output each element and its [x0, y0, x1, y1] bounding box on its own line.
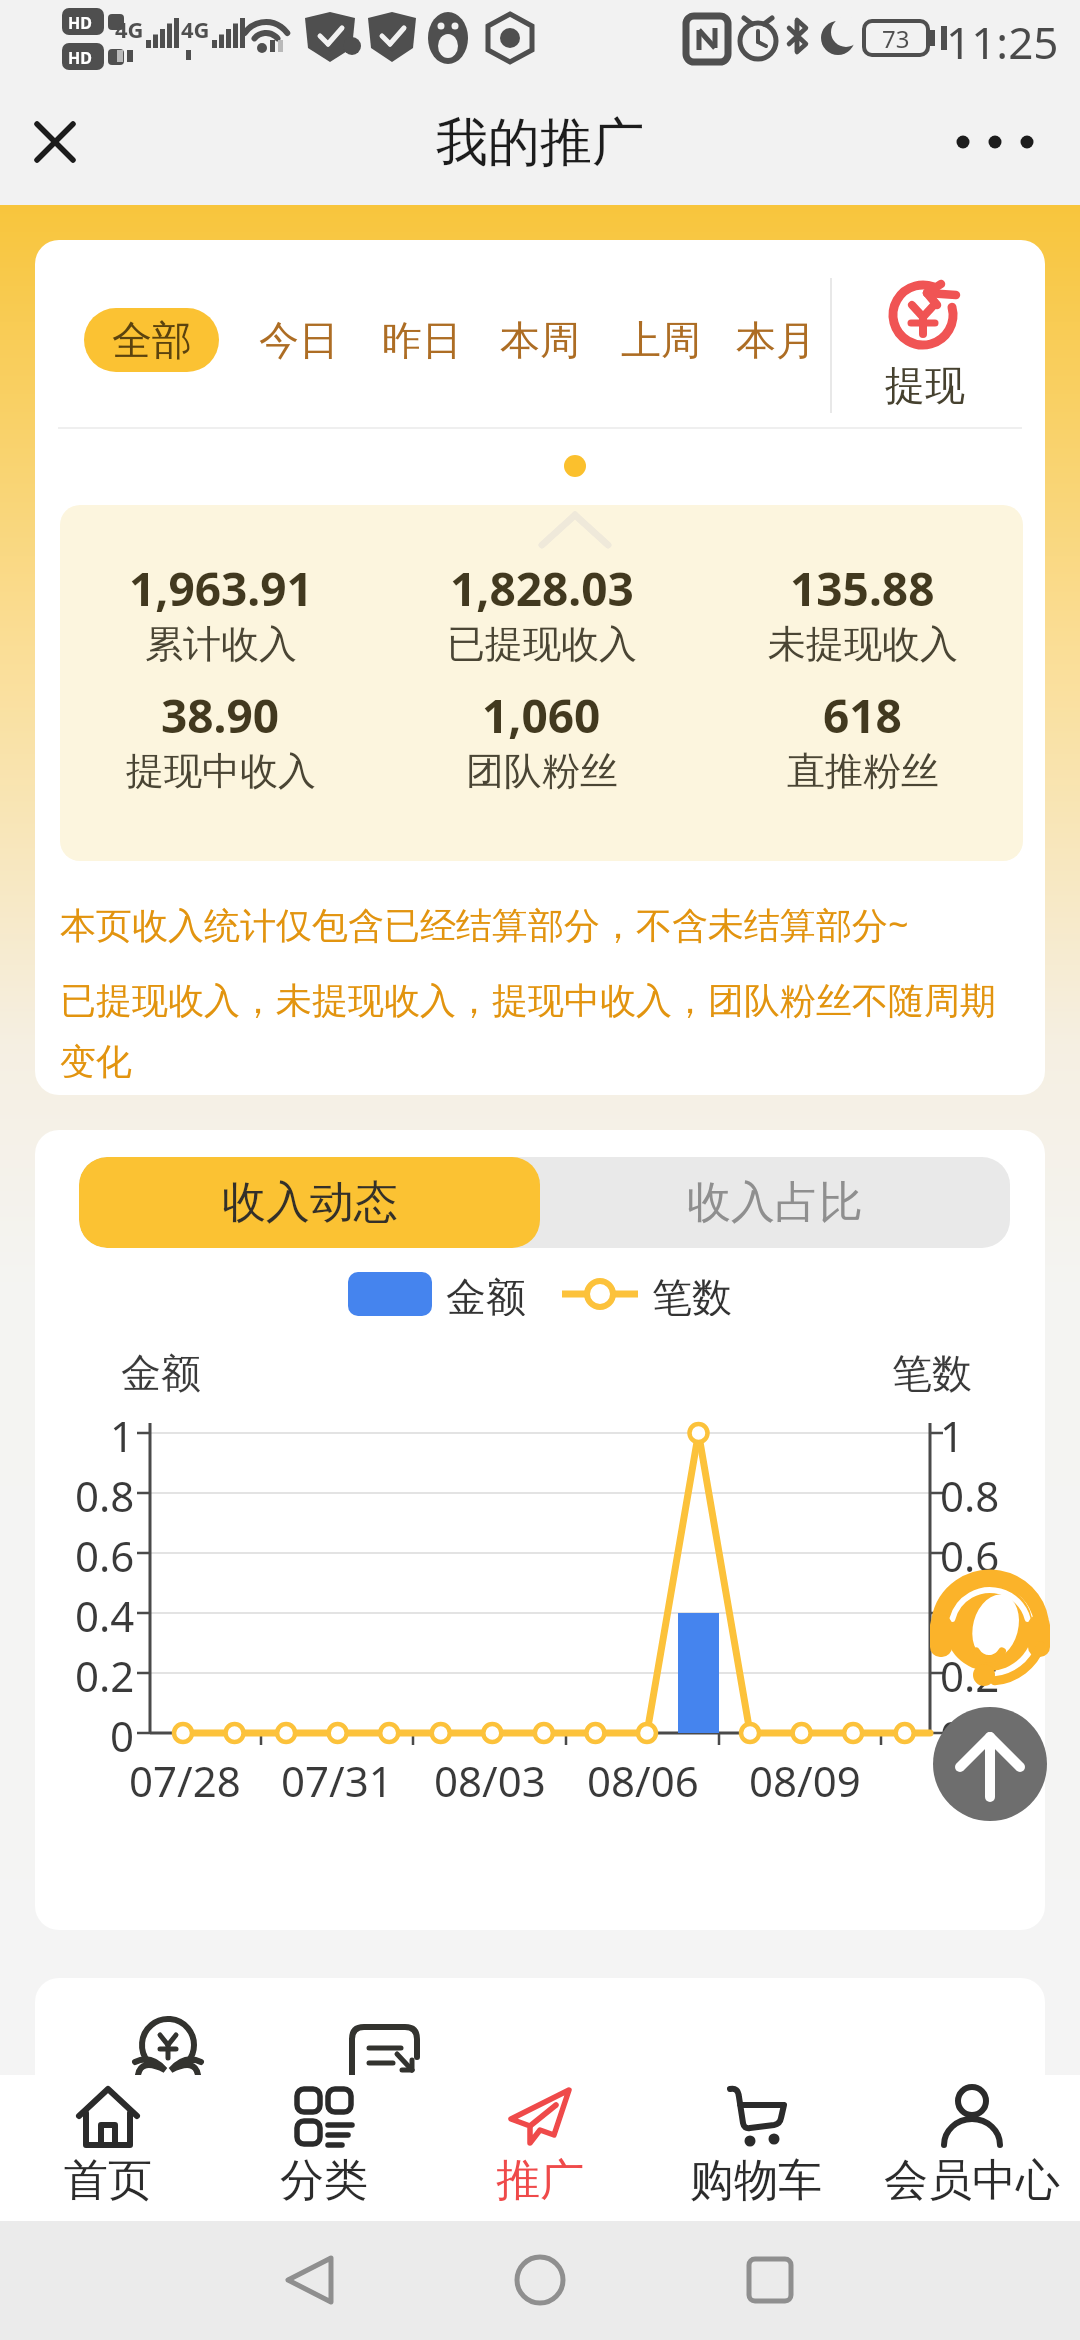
staticText: 0	[110, 1707, 135, 1759]
button[interactable]: 上周	[601, 308, 721, 372]
staticText: 08/06	[587, 1752, 699, 1804]
staticText: 会员中心	[884, 2153, 1060, 2208]
staticText: 首页	[64, 2153, 152, 2208]
button[interactable]: 本周	[480, 308, 600, 372]
staticText: 本周	[500, 315, 580, 365]
staticText: 我的推广	[436, 110, 644, 176]
staticText: 收入占比	[687, 1175, 863, 1230]
staticText: 购物车	[690, 2153, 822, 2208]
staticText: 0.4	[75, 1587, 135, 1639]
staticText: 1	[940, 1407, 965, 1459]
staticText: 618	[823, 684, 902, 747]
staticText: 今日	[259, 315, 339, 365]
staticText: 08/03	[434, 1752, 546, 1804]
staticText: 0.4	[940, 1587, 1000, 1639]
staticText: 38.90	[161, 684, 280, 747]
staticText: 07/28	[129, 1752, 241, 1804]
staticText: 73	[882, 22, 910, 54]
staticText: 4G	[181, 14, 210, 44]
button[interactable]: 收入动态	[79, 1157, 540, 1248]
staticText: 未提现收入	[768, 620, 958, 668]
staticText: 昨日	[382, 315, 462, 365]
button[interactable]: 会员中心	[864, 2075, 1080, 2221]
staticText: 1,828.03	[450, 557, 634, 620]
staticText: 07/31	[281, 1752, 393, 1804]
button[interactable]: 昨日	[362, 308, 482, 372]
staticText: 本月	[736, 315, 816, 365]
staticText: 11:25	[946, 12, 1059, 72]
staticText: 推广	[496, 2153, 584, 2208]
button[interactable]	[933, 1707, 1047, 1821]
staticText: 上周	[621, 315, 701, 365]
staticText: 累计收入	[145, 620, 297, 668]
button[interactable]: 分类	[216, 2075, 432, 2221]
staticText: 提现	[885, 360, 965, 410]
button[interactable]	[30, 117, 80, 167]
button[interactable]: 首页	[0, 2075, 216, 2221]
staticText: 已提现收入	[447, 620, 637, 668]
staticText: 金额	[446, 1272, 526, 1316]
button[interactable]	[270, 2250, 350, 2310]
staticText: 0.6	[75, 1527, 135, 1579]
staticText: 1	[110, 1407, 135, 1459]
staticText: 0.6	[940, 1527, 1000, 1579]
button[interactable]	[500, 2250, 580, 2310]
staticText: 提现中收入	[126, 747, 316, 795]
staticText: 0.2	[940, 1647, 1000, 1699]
staticText: 分类	[280, 2153, 368, 2208]
staticText: 08/09	[749, 1752, 861, 1804]
button[interactable]: 购物车	[648, 2075, 864, 2221]
button[interactable]	[928, 1565, 1052, 1689]
staticText: 1,963.91	[129, 557, 313, 620]
staticText: HD	[68, 47, 92, 69]
staticText: 收入动态	[222, 1175, 398, 1230]
staticText: 笔数	[892, 1348, 972, 1398]
staticText: 直推粉丝	[787, 747, 939, 795]
staticText: 0	[940, 1707, 965, 1759]
staticText: 0.8	[75, 1467, 135, 1519]
staticText: 1,060	[482, 684, 601, 747]
staticText: 0.8	[940, 1467, 1000, 1519]
button[interactable]: 收入占比	[540, 1157, 1010, 1248]
staticText: 团队粉丝	[466, 747, 618, 795]
staticText: 金额	[121, 1348, 201, 1398]
button[interactable]: 推广	[432, 2075, 648, 2221]
staticText: 135.88	[790, 557, 935, 620]
staticText: 笔数	[652, 1272, 732, 1316]
staticText: 4G	[115, 14, 144, 44]
button[interactable]: 全部	[84, 308, 219, 372]
staticText: 0.2	[75, 1647, 135, 1699]
button[interactable]: 今日	[239, 308, 359, 372]
staticText: 已提现收入，未提现收入，提现中收入，团队粉丝不随周期变化	[60, 978, 1020, 1085]
staticText: 全部	[112, 315, 192, 365]
staticText: HD	[68, 12, 92, 34]
button[interactable]	[950, 117, 1040, 167]
button[interactable]	[730, 2250, 810, 2310]
staticText: 本页收入统计仅包含已经结算部分，不含未结算部分~	[60, 900, 909, 949]
button[interactable]: 本月	[716, 308, 836, 372]
button[interactable]: 提现	[875, 274, 975, 404]
